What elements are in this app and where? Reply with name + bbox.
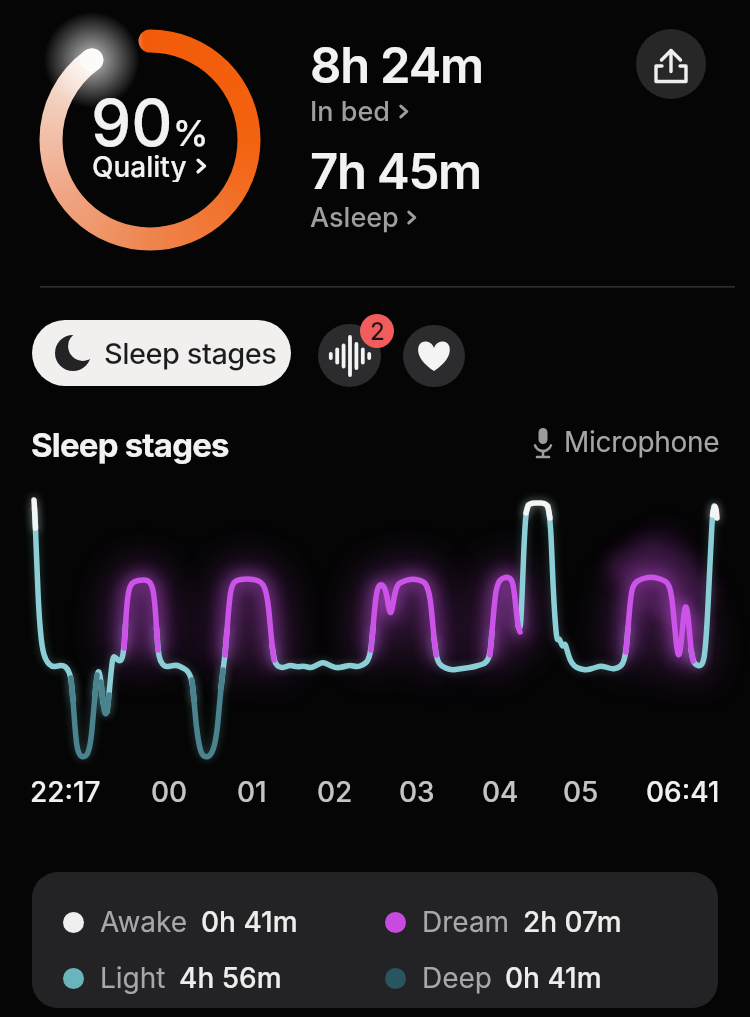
- staticText: 06:41: [646, 775, 720, 809]
- button[interactable]: Quality: [50, 150, 250, 182]
- staticText: 00: [151, 775, 188, 809]
- staticText: Light: [100, 961, 166, 995]
- button[interactable]: Microphone: [528, 424, 720, 460]
- staticText: Sleep stages: [104, 336, 277, 371]
- staticText: 05: [563, 775, 599, 809]
- staticText: Asleep: [310, 201, 399, 234]
- button[interactable]: [318, 324, 381, 387]
- staticText: 4h 56m: [179, 961, 282, 995]
- staticText: 04: [482, 775, 519, 809]
- staticText: 0h 41m: [505, 961, 602, 995]
- staticText: 90%: [91, 84, 209, 148]
- button[interactable]: Sleep stages: [32, 320, 291, 386]
- staticText: 0h 41m: [201, 905, 298, 939]
- staticText: 01: [237, 775, 267, 809]
- staticText: 7h 45m: [310, 142, 481, 201]
- button[interactable]: [636, 29, 706, 99]
- staticText: 03: [399, 775, 435, 809]
- staticText: 02: [317, 775, 353, 809]
- button[interactable]: In bed: [310, 95, 411, 128]
- staticText: Awake: [100, 905, 188, 939]
- staticText: 2: [370, 317, 385, 346]
- staticText: Sleep stages: [31, 425, 229, 465]
- staticText: 22:17: [30, 775, 101, 809]
- staticText: In bed: [310, 95, 391, 128]
- staticText: 2h 07m: [523, 905, 622, 939]
- staticText: Dream: [422, 905, 510, 939]
- button[interactable]: Asleep: [310, 201, 419, 234]
- staticText: 8h 24m: [310, 36, 484, 95]
- staticText: Microphone: [564, 425, 720, 459]
- button[interactable]: [403, 325, 465, 387]
- staticText: Deep: [422, 961, 492, 995]
- staticText: Quality: [92, 150, 187, 182]
